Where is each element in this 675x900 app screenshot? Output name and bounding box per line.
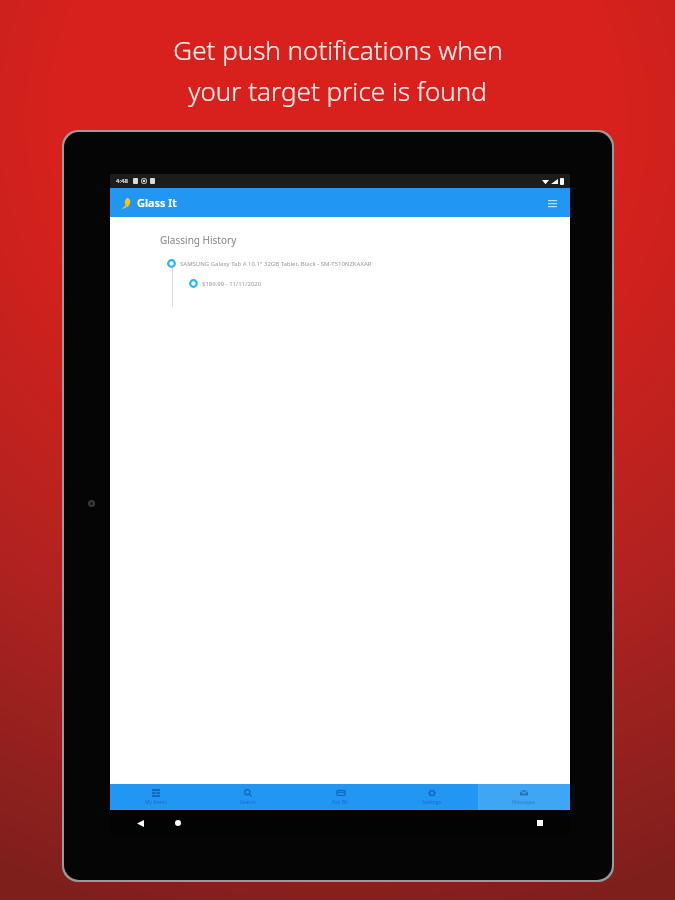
staticText: $189.99 - 11/11/2020 <box>202 280 262 288</box>
button[interactable]: Settings <box>386 784 478 810</box>
staticText: Settings <box>422 799 442 806</box>
staticText: Glassing History <box>160 233 237 247</box>
button[interactable]: Messages <box>478 784 570 810</box>
button[interactable]: Pay Bit <box>294 784 386 810</box>
staticText: Get push notifications when <box>173 32 503 67</box>
button[interactable]: SAMSUNG Galaxy Tab A 10.1" 32GB Tablet, … <box>167 259 372 268</box>
staticText: Glass It <box>137 195 177 210</box>
button[interactable]: Back <box>132 815 148 831</box>
button[interactable]: $189.99 - 11/11/2020 <box>189 279 262 288</box>
staticText: your target price is found <box>188 73 487 108</box>
button[interactable]: Home <box>170 815 186 831</box>
button[interactable]: Search <box>202 784 294 810</box>
staticText: My Items <box>145 799 167 806</box>
button[interactable]: Recent apps <box>532 815 548 831</box>
button[interactable]: Menu <box>546 197 558 209</box>
staticText: Search <box>240 799 256 806</box>
staticText: Messages <box>512 799 536 806</box>
staticText: Pay Bit <box>332 799 349 806</box>
button[interactable]: Glass It <box>120 195 177 210</box>
staticText: 4:48 <box>116 177 128 185</box>
button[interactable]: My Items <box>110 784 202 810</box>
staticText: SAMSUNG Galaxy Tab A 10.1" 32GB Tablet, … <box>180 260 372 268</box>
